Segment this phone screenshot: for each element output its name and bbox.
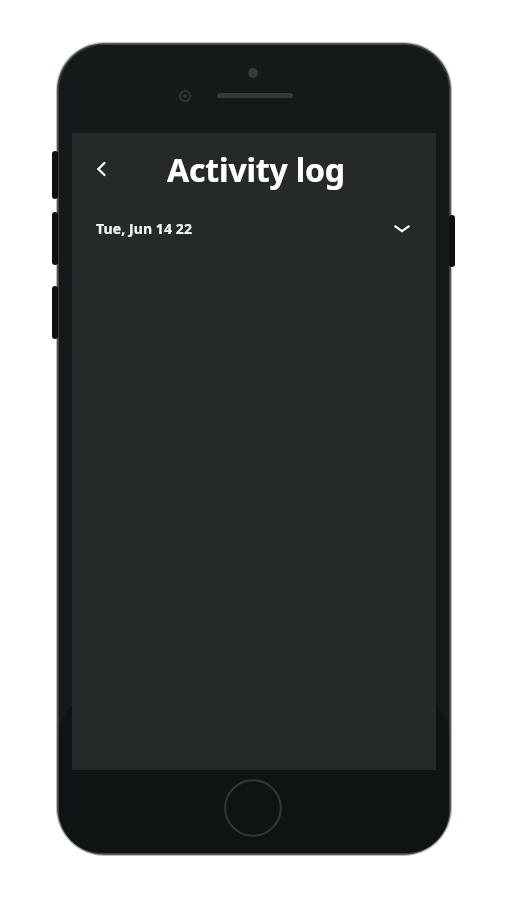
- other: Volume up: [52, 212, 58, 265]
- staticText: Tue, Jun 14 22: [96, 219, 193, 238]
- other: Power: [449, 215, 455, 267]
- other: Expand date picker: [394, 222, 410, 234]
- staticText: Activity log: [167, 148, 345, 192]
- other: Volume down: [52, 286, 58, 339]
- other: Home: [224, 779, 282, 837]
- other: Mute switch: [52, 151, 58, 199]
- button[interactable]: Back: [80, 147, 124, 191]
- button[interactable]: Tue, Jun 14 22: [72, 205, 436, 251]
